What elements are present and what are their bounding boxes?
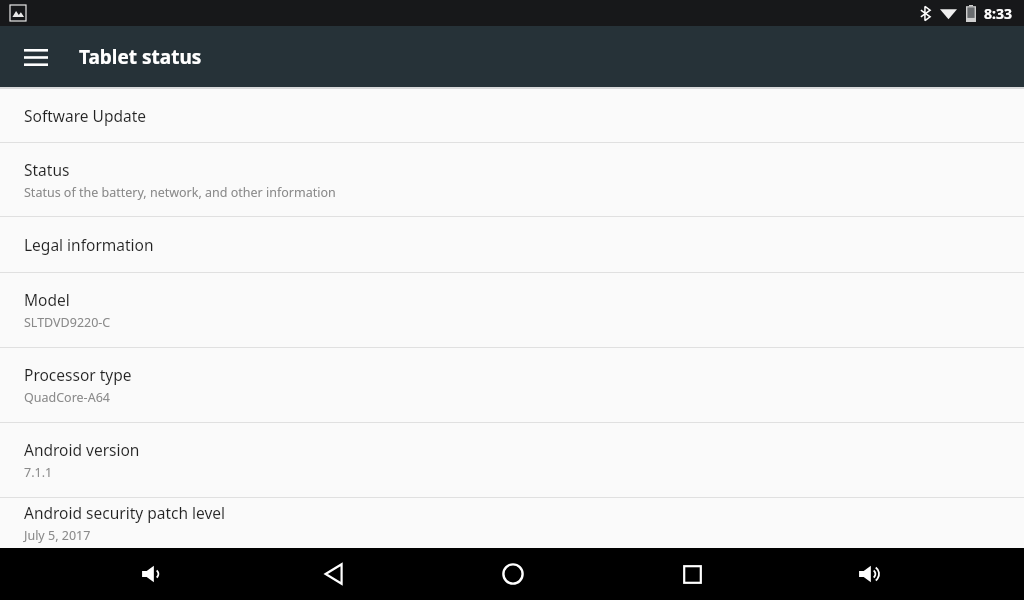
staticText: Model	[24, 289, 70, 310]
staticText: 7.1.1	[24, 464, 53, 481]
button[interactable]: Volume up	[845, 548, 897, 600]
button[interactable]: Software Update	[0, 89, 1024, 142]
staticText: Status	[24, 159, 70, 180]
staticText: Tablet status	[79, 44, 202, 70]
button[interactable]: Home	[487, 548, 539, 600]
button[interactable]: Recent apps	[666, 548, 718, 600]
staticText: July 5, 2017	[24, 527, 91, 544]
staticText: SLTDVD9220-C	[24, 314, 111, 331]
button[interactable]: Android version	[0, 423, 1024, 497]
button[interactable]: Status	[0, 143, 1024, 216]
staticText: Legal information	[24, 234, 154, 255]
button[interactable]: Android security patch level	[0, 498, 1024, 548]
staticText: Status of the battery, network, and othe…	[24, 184, 336, 201]
button[interactable]: Open navigation drawer	[12, 33, 60, 81]
button[interactable]: Legal information	[0, 217, 1024, 272]
staticText: QuadCore-A64	[24, 389, 110, 406]
button[interactable]: Processor type	[0, 348, 1024, 422]
button[interactable]: Back	[308, 548, 360, 600]
button[interactable]: Volume down	[128, 548, 180, 600]
staticText: Software Update	[24, 105, 146, 126]
staticText: Android security patch level	[24, 502, 226, 523]
button[interactable]: Model	[0, 273, 1024, 347]
staticText: Processor type	[24, 364, 132, 385]
staticText: 8:33	[984, 4, 1012, 23]
staticText: Android version	[24, 439, 140, 460]
